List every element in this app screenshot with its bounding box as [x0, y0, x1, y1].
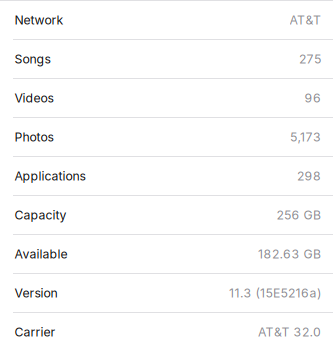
staticText: Available [14, 247, 67, 261]
staticText: Videos [14, 91, 53, 105]
staticText: 11.3 (15E5216a) [229, 286, 321, 300]
button[interactable]: Network [0, 1, 333, 40]
staticText: 96 [304, 91, 321, 105]
staticText: 275 [299, 52, 321, 66]
staticText: Capacity [14, 208, 66, 222]
staticText: Photos [14, 130, 53, 144]
staticText: 298 [297, 169, 321, 183]
staticText: AT&T 32.0 [258, 325, 321, 339]
button[interactable]: Carrier [0, 313, 333, 350]
staticText: 5,173 [290, 130, 321, 144]
button[interactable]: Available [0, 235, 333, 274]
staticText: Version [14, 286, 57, 300]
staticText: AT&T [289, 13, 321, 27]
staticText: 256 GB [276, 208, 321, 222]
button[interactable]: Photos [0, 118, 333, 157]
button[interactable]: Capacity [0, 196, 333, 235]
button[interactable]: Songs [0, 40, 333, 79]
button[interactable]: Applications [0, 157, 333, 196]
button[interactable]: Version [0, 274, 333, 313]
staticText: Applications [14, 169, 85, 183]
button[interactable]: Videos [0, 79, 333, 118]
staticText: Network [14, 13, 63, 27]
staticText: 182.63 GB [258, 247, 321, 261]
staticText: Songs [14, 52, 50, 66]
staticText: Carrier [14, 325, 55, 339]
